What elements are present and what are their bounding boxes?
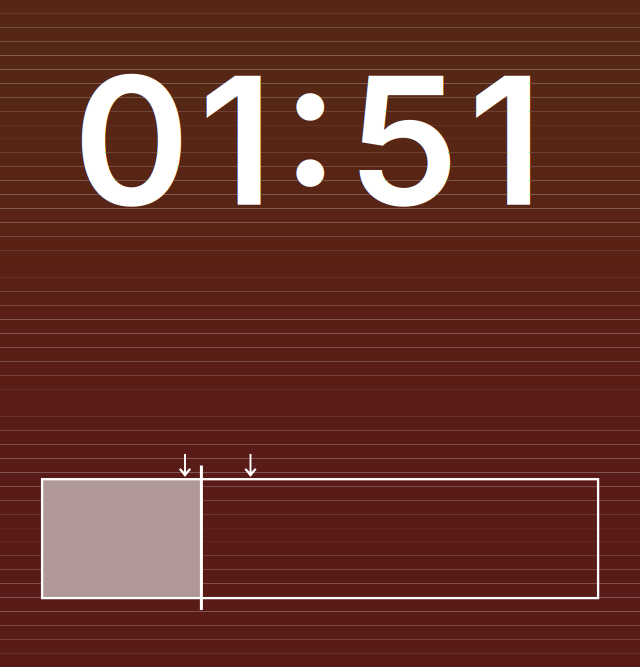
button[interactable]: Scrub position [42,479,598,598]
staticText: 01:51 [73,33,543,248]
